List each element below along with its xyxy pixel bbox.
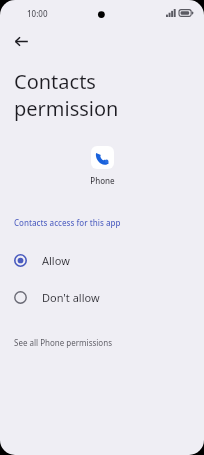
staticText: Phone xyxy=(90,175,115,186)
staticText: Allow xyxy=(42,253,70,268)
staticText: Don't allow xyxy=(42,290,100,305)
button[interactable]: Allow xyxy=(0,242,204,279)
staticText: 10:00 xyxy=(27,8,48,19)
staticText: Contacts permission xyxy=(14,68,119,122)
button[interactable]: Back xyxy=(6,26,36,56)
button[interactable]: Don't allow xyxy=(0,279,204,316)
button[interactable]: See all Phone permissions xyxy=(0,332,204,353)
staticText: See all Phone permissions xyxy=(14,337,112,348)
staticText: Contacts access for this app xyxy=(14,217,121,228)
